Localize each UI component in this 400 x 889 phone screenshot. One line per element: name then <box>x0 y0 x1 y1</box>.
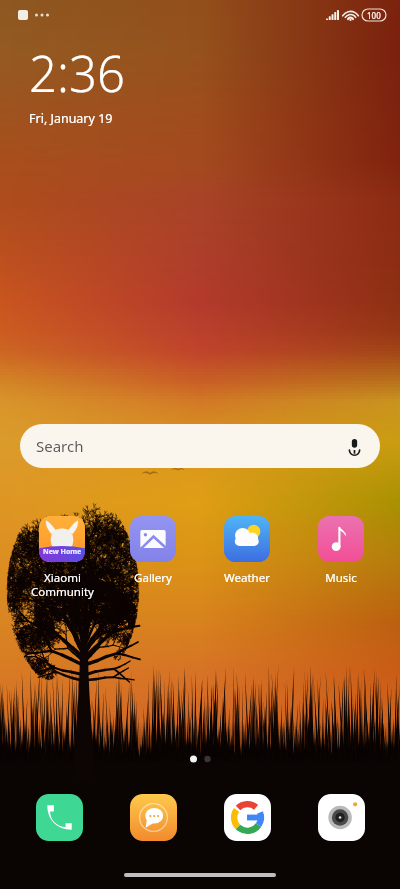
button[interactable]: Messages <box>130 794 177 841</box>
button[interactable]: Voice search <box>343 435 365 457</box>
button[interactable]: Google <box>224 794 271 841</box>
staticText: New Home <box>43 547 82 557</box>
staticText: 2:36 <box>29 40 125 107</box>
staticText: Fri, January 19 <box>29 110 113 127</box>
button[interactable]: Search <box>20 424 380 468</box>
staticText: Gallery <box>134 570 172 586</box>
button[interactable]: Phone <box>36 794 83 841</box>
button[interactable]: Gallery <box>112 516 194 586</box>
staticText: Search <box>36 436 84 456</box>
button[interactable]: Weather <box>206 516 288 586</box>
staticText: Music <box>325 570 357 586</box>
staticText: 100 <box>367 10 381 21</box>
staticText: Weather <box>224 570 270 586</box>
button[interactable]: Music <box>300 516 382 586</box>
button[interactable]: New Home <box>21 516 103 599</box>
staticText: Xiaomi Community <box>31 570 94 599</box>
button[interactable]: Camera <box>318 794 365 841</box>
